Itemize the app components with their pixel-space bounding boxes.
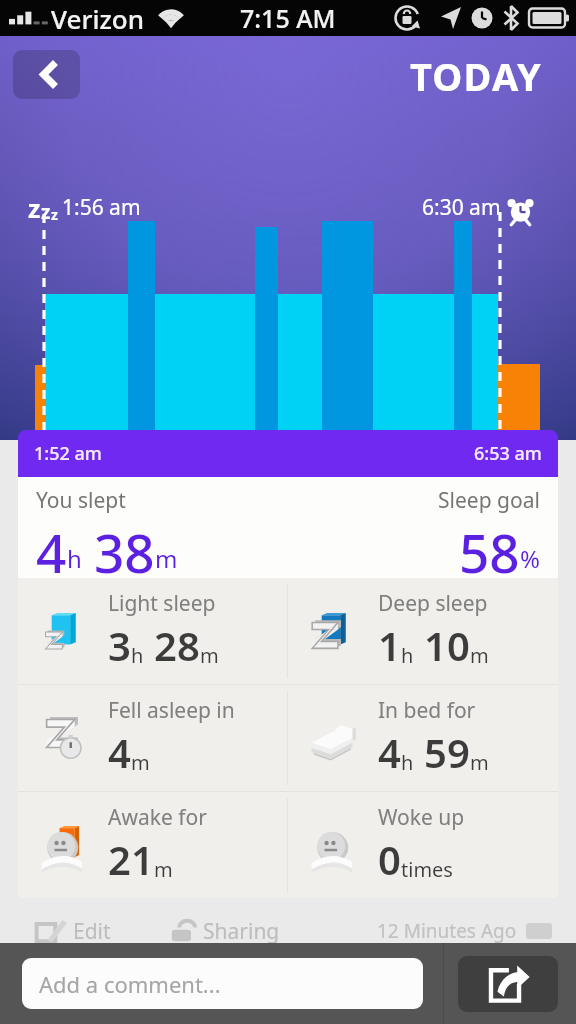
staticText: You slept [36, 486, 126, 515]
button[interactable]: Deep sleep [288, 578, 558, 684]
staticText: 4 [108, 725, 131, 779]
staticText: m [154, 856, 173, 883]
staticText: 1:56 am [62, 193, 141, 222]
staticText: z [41, 199, 51, 225]
button[interactable]: Awake for [18, 792, 287, 898]
staticText: 59 [424, 725, 470, 779]
button[interactable]: Back [13, 50, 80, 99]
staticText: h [401, 749, 414, 776]
button[interactable]: Share [458, 956, 558, 1012]
staticText: z [51, 205, 58, 224]
staticText: 4 [36, 516, 67, 578]
staticText: m [470, 749, 489, 776]
staticText: 1:52 am [34, 441, 102, 466]
staticText: m [470, 642, 489, 669]
staticText: h [401, 642, 414, 669]
staticText: Awake for [108, 803, 207, 832]
staticText: h [67, 542, 82, 575]
button[interactable]: Fell asleep in [18, 685, 287, 791]
staticText: times [401, 856, 453, 883]
staticText: 4 [378, 725, 401, 779]
staticText: 7:15 AM [240, 1, 336, 35]
staticText: Deep sleep [378, 589, 488, 618]
staticText: 0 [378, 832, 401, 886]
staticText: 1 [378, 618, 401, 672]
staticText: 28 [154, 618, 200, 672]
staticText: 6:53 am [474, 441, 542, 466]
staticText: h [131, 642, 144, 669]
staticText: 38 [94, 516, 155, 578]
staticText: m [200, 642, 219, 669]
staticText: Sleep goal [438, 486, 540, 515]
staticText: Fell asleep in [108, 696, 235, 725]
staticText: Verizon [51, 1, 145, 36]
staticText: Add a comment... [39, 969, 221, 999]
staticText: 10 [424, 618, 470, 672]
staticText: 21 [108, 832, 154, 886]
staticText: m [131, 749, 150, 776]
staticText: m [155, 542, 178, 575]
staticText: Woke up [378, 803, 465, 832]
staticText: 3 [108, 618, 131, 672]
staticText: 58 [459, 516, 520, 578]
button[interactable]: In bed for [288, 685, 558, 791]
staticText: Edit [73, 917, 111, 946]
staticText: In bed for [378, 696, 476, 725]
button[interactable]: Add a comment... [22, 958, 423, 1009]
button[interactable]: Light sleep [18, 578, 287, 684]
staticText: % [520, 542, 540, 575]
staticText: z [28, 191, 41, 225]
staticText: Light sleep [108, 589, 216, 618]
staticText: Sharing [203, 917, 280, 946]
staticText: 12 Minutes Ago [377, 918, 517, 944]
staticText: TODAY [410, 50, 543, 102]
staticText: 6:30 am [422, 193, 501, 222]
button[interactable]: Woke up [288, 792, 558, 898]
